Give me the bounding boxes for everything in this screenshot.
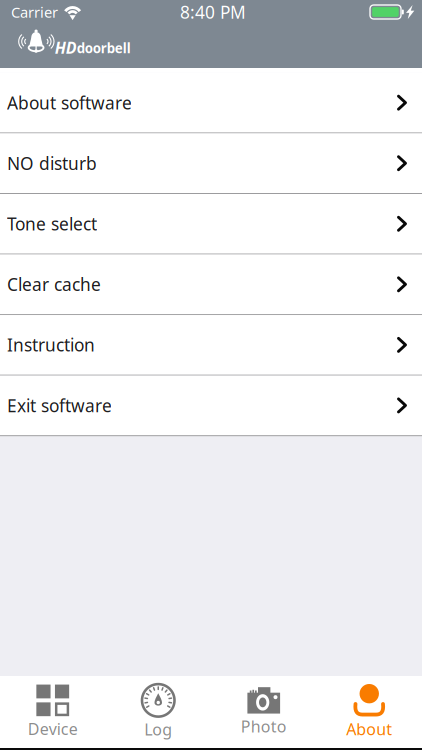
button[interactable]: Clear cache (0, 254, 422, 315)
button[interactable]: Tone select (0, 194, 422, 254)
button[interactable]: About software (0, 73, 422, 133)
button[interactable]: NO disturb (0, 133, 422, 194)
staticText: Tone select (7, 212, 97, 235)
button[interactable]: Device (0, 676, 105, 748)
staticText: Log (144, 719, 172, 740)
staticText: Device (28, 718, 78, 739)
staticText: About (346, 718, 392, 740)
staticText: Exit software (7, 394, 112, 417)
button[interactable]: Instruction (0, 315, 422, 376)
staticText: doorbell (77, 39, 131, 57)
button[interactable]: Log (105, 676, 211, 748)
staticText: Carrier (11, 2, 58, 22)
staticText: Clear cache (7, 273, 101, 296)
button[interactable]: Photo (211, 676, 316, 748)
staticText: About software (7, 91, 132, 114)
staticText: Instruction (7, 333, 95, 356)
staticText: Photo (241, 716, 287, 737)
staticText: HD (55, 37, 77, 58)
staticText: 8:40 PM (180, 0, 246, 23)
button[interactable]: About (316, 676, 422, 748)
staticText: NO disturb (7, 152, 97, 175)
button[interactable]: Exit software (0, 376, 422, 436)
